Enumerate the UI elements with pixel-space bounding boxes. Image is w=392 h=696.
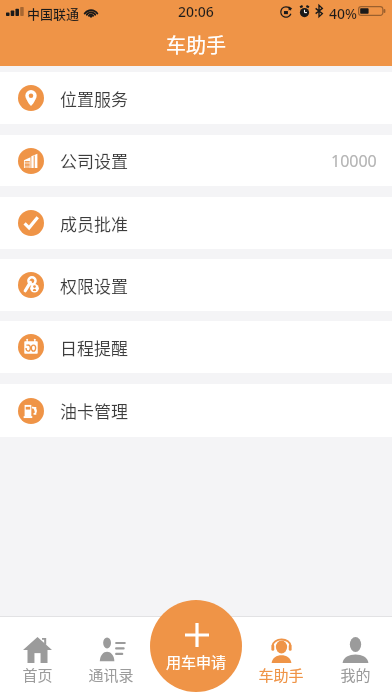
- staticText: 40%: [329, 4, 357, 23]
- staticText: 成员批准: [60, 211, 128, 236]
- button[interactable]: 首页: [0, 617, 74, 696]
- staticText: 首页: [22, 664, 53, 686]
- staticText: 权限设置: [60, 273, 128, 298]
- button[interactable]: 油卡管理: [0, 384, 392, 437]
- button[interactable]: 车助手: [244, 617, 318, 696]
- button[interactable]: 用车申请: [150, 600, 242, 692]
- button[interactable]: 位置服务: [0, 72, 392, 124]
- button[interactable]: 成员批准: [0, 197, 392, 249]
- staticText: 公司设置: [60, 148, 128, 173]
- button[interactable]: 我的: [318, 617, 392, 696]
- staticText: 车助手: [258, 664, 304, 686]
- staticText: 位置服务: [60, 86, 128, 111]
- button[interactable]: 通讯录: [74, 617, 148, 696]
- staticText: 车助手: [166, 30, 226, 59]
- button[interactable]: 公司设置: [0, 135, 392, 186]
- staticText: 10000: [331, 150, 377, 172]
- staticText: 油卡管理: [60, 398, 128, 423]
- staticText: 中国联通: [27, 4, 80, 23]
- staticText: 通讯录: [88, 664, 134, 686]
- staticText: 20:06: [178, 2, 214, 21]
- staticText: 用车申请: [166, 651, 227, 673]
- button[interactable]: 权限设置: [0, 259, 392, 311]
- staticText: 我的: [340, 664, 371, 686]
- staticText: 日程提醒: [60, 335, 128, 360]
- button[interactable]: 日程提醒: [0, 321, 392, 373]
